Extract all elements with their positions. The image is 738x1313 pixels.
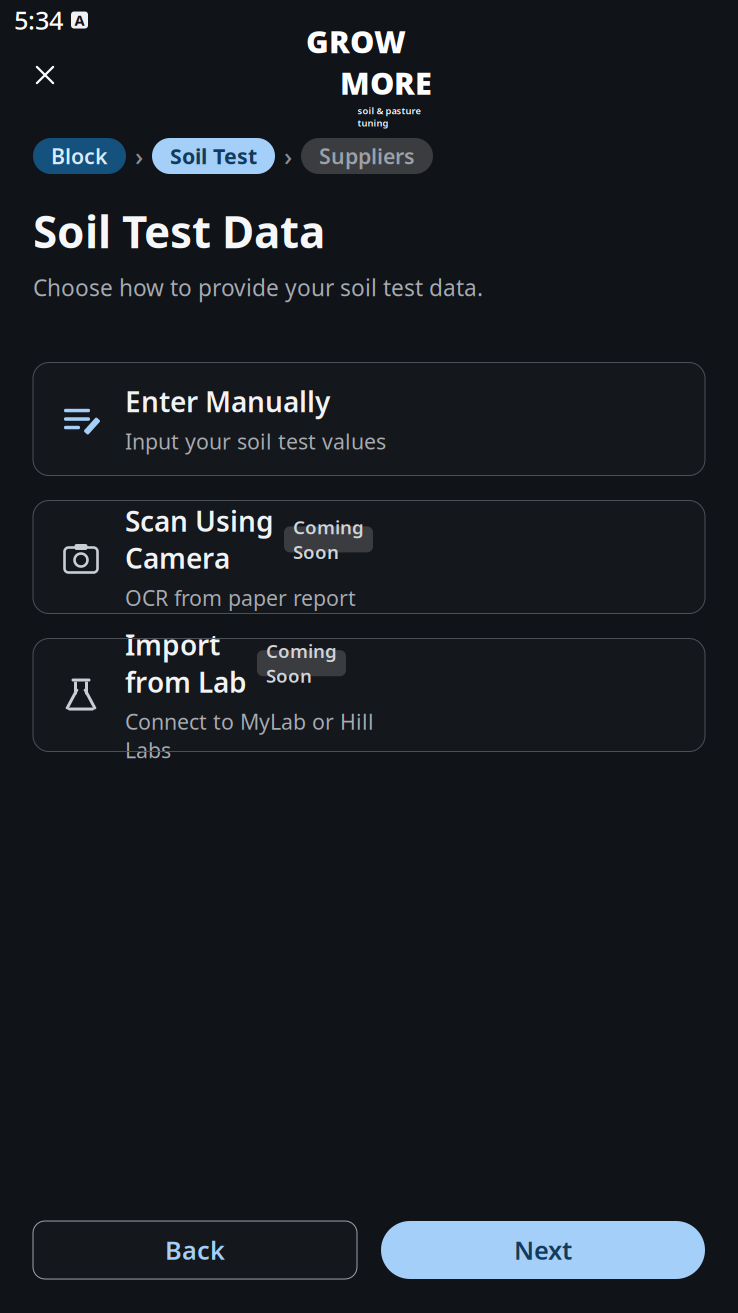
staticText: Enter Manually xyxy=(125,383,330,420)
staticText: Coming Soon xyxy=(293,515,364,564)
staticText: Coming Soon xyxy=(266,638,337,688)
staticText: Scan Using Camera xyxy=(125,502,274,577)
staticText: OCR from paper report xyxy=(125,583,356,612)
staticText: Input your soil test values xyxy=(125,427,386,455)
button[interactable]: Soil Test xyxy=(152,138,275,174)
staticText: Soil Test xyxy=(170,142,257,170)
staticText: Connect to MyLab or Hill Labs xyxy=(125,707,374,764)
button[interactable]: Block xyxy=(33,138,126,174)
staticText: GROW xyxy=(306,21,406,62)
button[interactable]: Next xyxy=(381,1221,705,1279)
staticText: Block xyxy=(51,142,108,170)
button[interactable]: Back xyxy=(33,1221,357,1279)
staticText: › xyxy=(135,139,143,173)
staticText: Suppliers xyxy=(319,142,415,170)
staticText: A xyxy=(74,10,84,30)
button[interactable]: Close xyxy=(22,52,68,98)
staticText: MORE xyxy=(340,63,432,103)
button[interactable]: Import from Lab xyxy=(33,638,705,751)
staticText: › xyxy=(284,139,292,173)
staticText: Next xyxy=(514,1233,572,1267)
staticText: 5:34 xyxy=(14,3,63,37)
staticText: soil & pasture tuning xyxy=(357,104,420,129)
button[interactable]: Enter Manually xyxy=(33,362,705,475)
button[interactable]: Suppliers xyxy=(301,138,433,174)
button[interactable]: Scan Using Camera xyxy=(33,500,705,613)
staticText: Import from Lab xyxy=(125,626,247,700)
staticText: Back xyxy=(165,1233,225,1267)
staticText: Choose how to provide your soil test dat… xyxy=(33,272,483,302)
staticText: Soil Test Data xyxy=(33,202,325,260)
